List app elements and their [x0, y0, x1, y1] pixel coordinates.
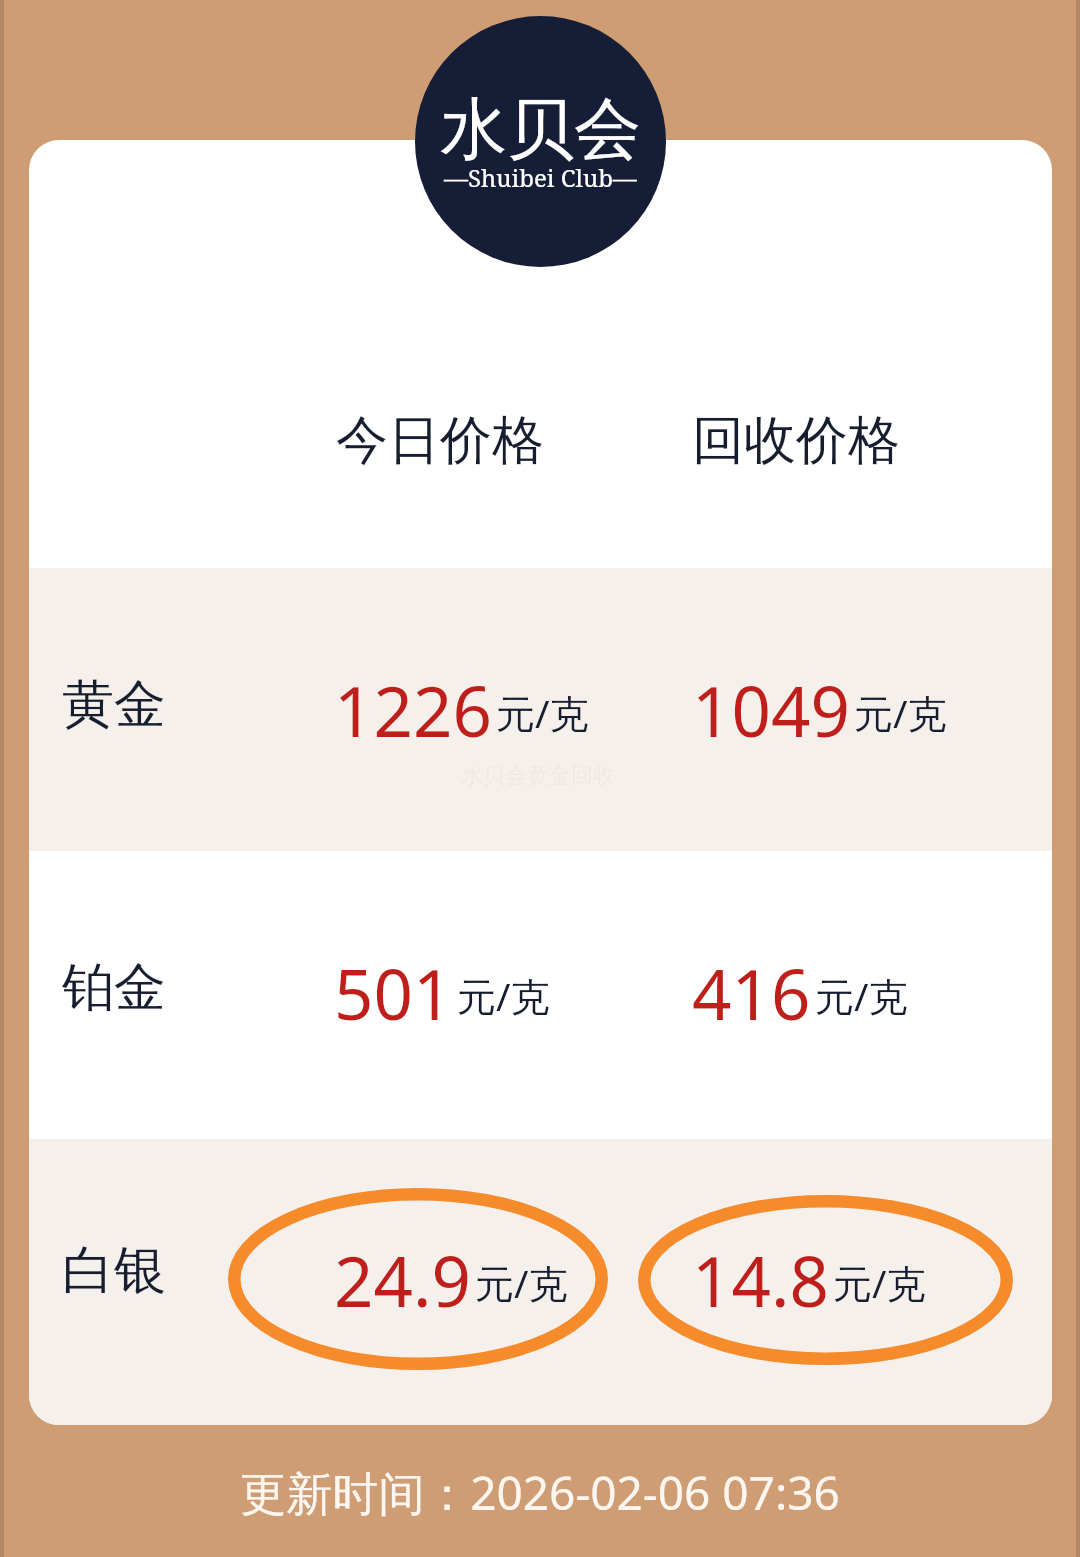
staticText: 元/克 [496, 686, 589, 739]
button[interactable]: 铂金 [29, 851, 1052, 1139]
button[interactable]: 501 [334, 946, 550, 1040]
staticText: 元/克 [854, 686, 947, 739]
staticText: 1226 [334, 663, 492, 757]
staticText: 416 [692, 946, 811, 1040]
staticText: 元/克 [457, 969, 550, 1022]
button[interactable]: 白银 [29, 1139, 1052, 1425]
staticText: 元/克 [815, 969, 908, 1022]
staticText: —Shuibei Club— [444, 161, 637, 194]
staticText: 回收价格 [692, 408, 900, 474]
button[interactable]: 416 [692, 946, 908, 1040]
staticText: 1049 [692, 663, 850, 757]
staticText: 元/克 [833, 1256, 926, 1309]
staticText: 铂金 [62, 955, 166, 1021]
staticText: 黄金 [62, 672, 166, 738]
staticText: 元/克 [475, 1256, 568, 1309]
button[interactable]: 1049 [692, 663, 947, 757]
button[interactable]: 1226 [334, 663, 589, 757]
staticText: 水贝会 [440, 87, 641, 171]
staticText: 24.9 [334, 1233, 471, 1327]
staticText: 更新时间：2026-02-06 07:36 [0, 1461, 1080, 1524]
button[interactable]: 水贝会 Shuibei Club logo [415, 16, 666, 267]
staticText: 白银 [62, 1238, 166, 1304]
button[interactable]: 14.8 [692, 1233, 926, 1327]
button[interactable]: 24.9 [334, 1233, 568, 1327]
staticText: 14.8 [692, 1233, 829, 1327]
staticText: 501 [334, 946, 453, 1040]
button[interactable]: 黄金 [29, 568, 1052, 851]
staticText: 今日价格 [336, 408, 544, 474]
